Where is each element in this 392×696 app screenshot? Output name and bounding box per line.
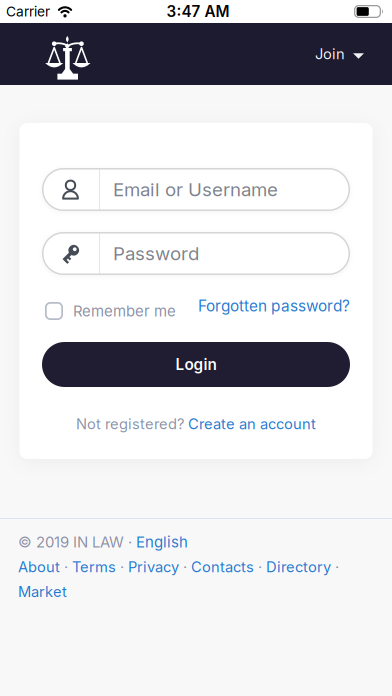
- staticText: Create an account: [188, 415, 316, 433]
- button[interactable]: Directory: [266, 558, 331, 576]
- staticText: English: [136, 533, 188, 551]
- staticText: ·: [254, 558, 266, 576]
- button[interactable]: Login: [42, 342, 350, 387]
- staticText: Remember me: [73, 302, 176, 320]
- staticText: Directory: [266, 558, 331, 576]
- staticText: Forgotten password?: [198, 297, 350, 315]
- staticText: Market: [18, 583, 67, 600]
- button[interactable]: Password: [42, 232, 350, 275]
- button[interactable]: Email or Username: [42, 168, 350, 211]
- staticText: Carrier: [6, 3, 50, 20]
- button[interactable]: Forgotten password?: [198, 302, 350, 320]
- staticText: Join: [315, 45, 345, 63]
- staticText: Login: [175, 355, 216, 374]
- staticText: 3:47 AM: [166, 2, 229, 21]
- staticText: © 2019 IN LAW ·: [18, 533, 136, 551]
- staticText: Password: [113, 242, 199, 265]
- staticText: Contacts: [191, 558, 254, 576]
- staticText: Privacy: [128, 558, 179, 576]
- staticText: About: [18, 558, 60, 576]
- button[interactable]: Join: [315, 45, 364, 63]
- staticText: Not registered?: [76, 415, 188, 433]
- staticText: Email or Username: [113, 178, 278, 201]
- button[interactable]: Market: [18, 583, 67, 600]
- button[interactable]: Create an account: [188, 415, 316, 433]
- button[interactable]: Contacts: [191, 558, 254, 576]
- button[interactable]: Terms: [72, 558, 116, 576]
- button[interactable]: Remember me: [42, 302, 176, 320]
- staticText: ·: [331, 558, 339, 576]
- staticText: Terms: [72, 558, 116, 576]
- button[interactable]: About: [18, 558, 60, 576]
- button[interactable]: Privacy: [128, 558, 179, 576]
- staticText: ·: [179, 558, 191, 576]
- staticText: ·: [116, 558, 128, 576]
- button[interactable]: English: [136, 533, 188, 551]
- staticText: ·: [60, 558, 72, 576]
